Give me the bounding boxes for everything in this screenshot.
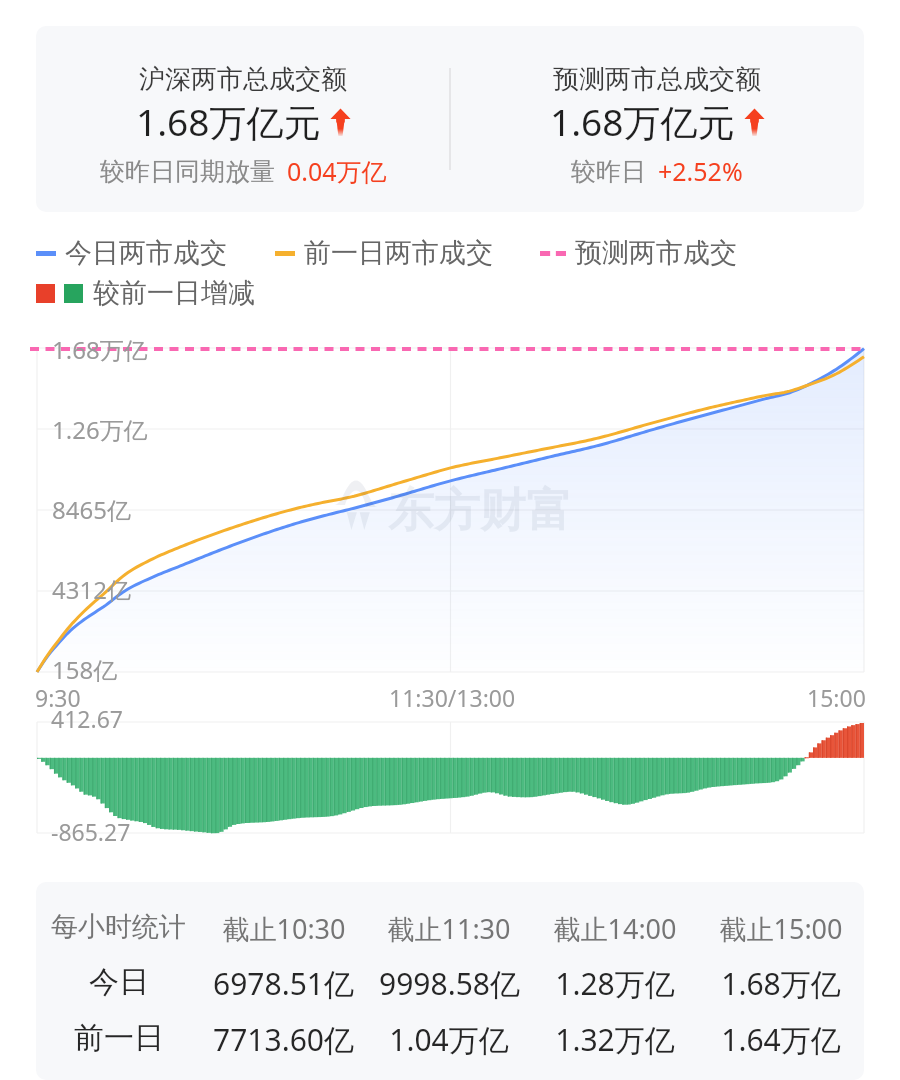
staticText: 1.32万亿 (555, 1019, 675, 1060)
staticText: 1.68万亿元 (136, 96, 321, 147)
staticText: 158亿 (52, 653, 118, 686)
staticText: 今日两市成交 (65, 236, 227, 270)
staticText: 截止14:00 (553, 910, 677, 947)
staticText: 9998.58亿 (379, 963, 520, 1004)
staticText: 1.68万亿 (721, 963, 841, 1004)
staticText: 预测两市成交 (575, 236, 737, 270)
staticText: 今日 (89, 963, 149, 1001)
button[interactable]: 每小时统计 (36, 882, 864, 1080)
staticText: +2.52% (658, 154, 743, 188)
staticText: 截止10:30 (222, 910, 346, 947)
staticText: 沪深两市总成交额 (139, 63, 347, 96)
staticText: 东方财富 (388, 482, 572, 540)
staticText: 前一日两市成交 (304, 236, 493, 270)
staticText: 1.64万亿 (721, 1019, 841, 1060)
staticText: 4312亿 (52, 573, 131, 606)
staticText: -865.27 (51, 816, 131, 847)
staticText: 6978.51亿 (213, 963, 354, 1004)
staticText: 15:00 (807, 682, 866, 713)
staticText: 1.28万亿 (555, 963, 675, 1004)
staticText: 较昨日 (571, 156, 646, 187)
staticText: 9:30 (35, 682, 81, 713)
staticText: 预测两市总成交额 (553, 63, 761, 96)
staticText: 8465亿 (52, 493, 131, 526)
staticText: 较前一日增减 (93, 276, 255, 310)
staticText: 11:30/13:00 (389, 682, 516, 713)
staticText: 0.04万亿 (287, 154, 387, 188)
staticText: 每小时统计 (51, 910, 186, 944)
staticText: 较昨日同期放量 (100, 156, 275, 187)
staticText: 1.68万亿元 (550, 96, 735, 147)
staticText: 7713.60亿 (213, 1019, 354, 1060)
staticText: 1.68万亿 (52, 333, 148, 366)
staticText: 1.04万亿 (389, 1019, 509, 1060)
staticText: 412.67 (51, 703, 123, 734)
button[interactable]: 沪深两市总成交额 (36, 26, 864, 212)
staticText: 1.26万亿 (52, 413, 148, 446)
staticText: 截止15:00 (719, 910, 843, 947)
staticText: 前一日 (74, 1019, 164, 1057)
staticText: 截止11:30 (387, 910, 511, 947)
